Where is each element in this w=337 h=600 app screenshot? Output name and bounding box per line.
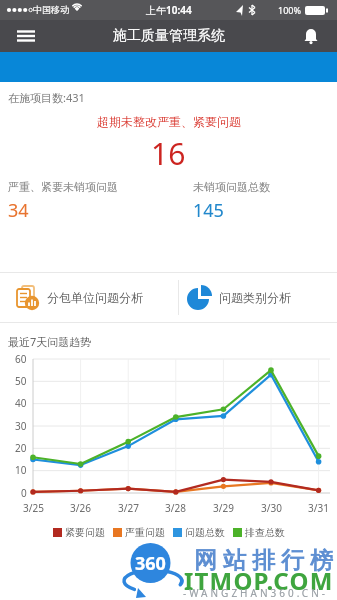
- staticText: 分包单位问题分析: [47, 290, 143, 305]
- staticText: 50: [15, 374, 27, 388]
- staticText: 最近7天问题趋势: [8, 334, 92, 349]
- staticText: 问题总数: [185, 526, 225, 539]
- staticText: 问题类别分析: [219, 290, 291, 305]
- staticText: 10: [15, 463, 27, 477]
- staticText: 在施项目数:431: [8, 90, 85, 105]
- staticText: 0: [21, 486, 27, 500]
- button[interactable]: 问题类别分析: [179, 273, 337, 322]
- staticText: 严重、紧要未销项问题: [8, 180, 118, 194]
- staticText: -WANGZHAN360.CN-: [183, 586, 328, 600]
- staticText: 超期未整改严重、紧要问题: [97, 114, 241, 129]
- staticText: 3/28: [165, 501, 186, 515]
- staticText: 20: [15, 441, 27, 455]
- staticText: ITMOP.COM: [184, 564, 334, 597]
- staticText: 145: [193, 198, 224, 223]
- staticText: 34: [8, 198, 29, 223]
- staticText: 中国移动: [33, 4, 69, 15]
- button[interactable]: 分包单位问题分析: [0, 273, 178, 322]
- staticText: 3/31: [308, 501, 329, 515]
- staticText: 100%: [278, 4, 301, 16]
- staticText: 16: [151, 133, 186, 174]
- staticText: 60: [15, 352, 27, 366]
- staticText: 施工质量管理系统: [113, 27, 225, 45]
- staticText: 3/25: [23, 501, 44, 515]
- staticText: 3/30: [261, 501, 282, 515]
- staticText: 30: [15, 419, 27, 433]
- button[interactable]: [10, 24, 42, 48]
- staticText: 严重问题: [125, 526, 165, 539]
- staticText: 网 站 排 行 榜: [194, 543, 333, 574]
- staticText: 3/26: [70, 501, 91, 515]
- staticText: 排查总数: [245, 526, 285, 539]
- staticText: 3/27: [118, 501, 139, 515]
- staticText: 40: [15, 396, 27, 410]
- staticText: 紧要问题: [65, 526, 105, 539]
- button[interactable]: [295, 24, 327, 48]
- staticText: 上午10:44: [146, 3, 192, 17]
- staticText: 360: [135, 551, 166, 576]
- staticText: 3/29: [213, 501, 234, 515]
- staticText: 未销项问题总数: [193, 180, 270, 194]
